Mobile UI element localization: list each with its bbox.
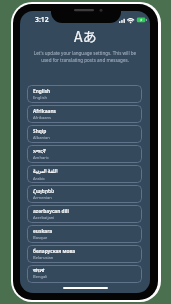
button[interactable]: Հայերեն [27,185,142,203]
staticText: English [33,95,47,101]
button[interactable]: Shqip [27,125,142,143]
staticText: Afrikaans [33,108,57,115]
button[interactable]: euskara [27,225,142,243]
staticText: Armenian [33,195,52,201]
staticText: Հայերեն [33,188,55,195]
staticText: Bengali [33,274,48,280]
staticText: Azerbaijani [33,215,55,221]
staticText: አማርኛ [33,148,46,155]
staticText: English [33,88,51,95]
staticText: Belarusian [33,255,54,261]
staticText: Aあ [74,26,97,46]
staticText: Albanian [33,135,50,141]
button[interactable]: বাংলা [27,265,142,283]
button[interactable]: English [27,85,142,103]
button[interactable]: azərbaycan dili [27,205,142,223]
staticText: Amharic [33,155,49,161]
staticText: اللغة العربية [33,166,58,176]
staticText: Afrikaans [33,115,52,121]
staticText: azərbaycan dili [33,208,69,215]
staticText: Shqip [33,128,47,135]
staticText: বাংলা [33,268,45,274]
button[interactable]: беларуская мова [27,245,142,263]
staticText: беларуская мова [33,248,76,255]
staticText: Basque [33,235,48,241]
staticText: 3:12 [35,15,49,24]
staticText: Arabic [33,176,46,182]
button[interactable]: اللغة العربية [27,165,142,183]
staticText: euskara [33,228,53,235]
staticText: Let's update your language settings. Thi… [32,50,138,63]
button[interactable]: Afrikaans [27,105,142,123]
button[interactable]: አማርኛ [27,145,142,163]
